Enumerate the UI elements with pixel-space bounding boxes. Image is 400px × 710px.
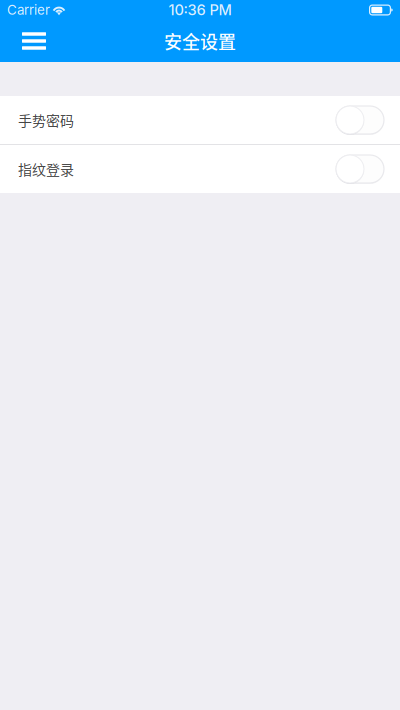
button[interactable]: Menu [0, 20, 60, 62]
staticText: 10:36 PM [168, 1, 231, 19]
staticText: 手势密码 [18, 110, 74, 130]
staticText: Carrier [7, 2, 50, 18]
staticText: 安全设置 [164, 28, 236, 54]
button[interactable]: 手势密码 [0, 96, 400, 144]
staticText: 指纹登录 [18, 159, 74, 179]
button[interactable]: 指纹登录 [0, 145, 400, 193]
